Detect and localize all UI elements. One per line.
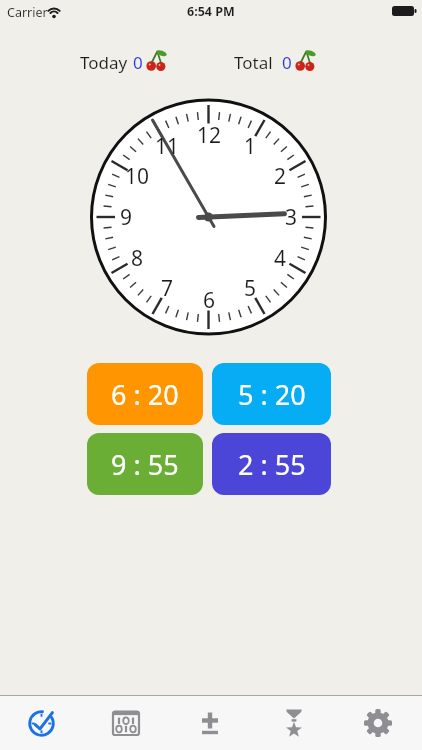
button[interactable] (336, 695, 420, 750)
staticText: 2 (274, 162, 287, 190)
button[interactable] (0, 695, 84, 750)
button[interactable]: 9 : 55 (87, 433, 203, 495)
staticText: 11 (155, 132, 180, 160)
staticText: Carrier (7, 4, 48, 21)
button[interactable] (252, 695, 336, 750)
staticText: 10 (125, 162, 150, 190)
staticText: Total (234, 51, 273, 74)
staticText: 5 : 20 (238, 376, 306, 413)
button[interactable] (84, 695, 168, 750)
staticText: 8 (131, 244, 144, 272)
staticText: 0 (282, 51, 292, 74)
button[interactable]: 6 : 20 (87, 363, 203, 425)
staticText: 12 (197, 121, 222, 149)
staticText: 9 (120, 203, 133, 231)
staticText: 4 (274, 244, 287, 272)
staticText: 0 (133, 51, 143, 74)
button[interactable] (168, 695, 252, 750)
staticText: 5 (244, 274, 257, 302)
staticText: 1 (244, 132, 257, 160)
staticText: Today (80, 51, 128, 74)
button[interactable]: 2 : 55 (212, 433, 331, 495)
staticText: 9 : 55 (111, 446, 179, 483)
staticText: 6 : 20 (111, 376, 179, 413)
staticText: 6 (203, 286, 216, 314)
button[interactable]: 5 : 20 (212, 363, 331, 425)
staticText: 6:54 PM (187, 3, 235, 20)
staticText: 3 (285, 203, 298, 231)
staticText: 7 (161, 274, 174, 302)
staticText: 2 : 55 (238, 446, 306, 483)
